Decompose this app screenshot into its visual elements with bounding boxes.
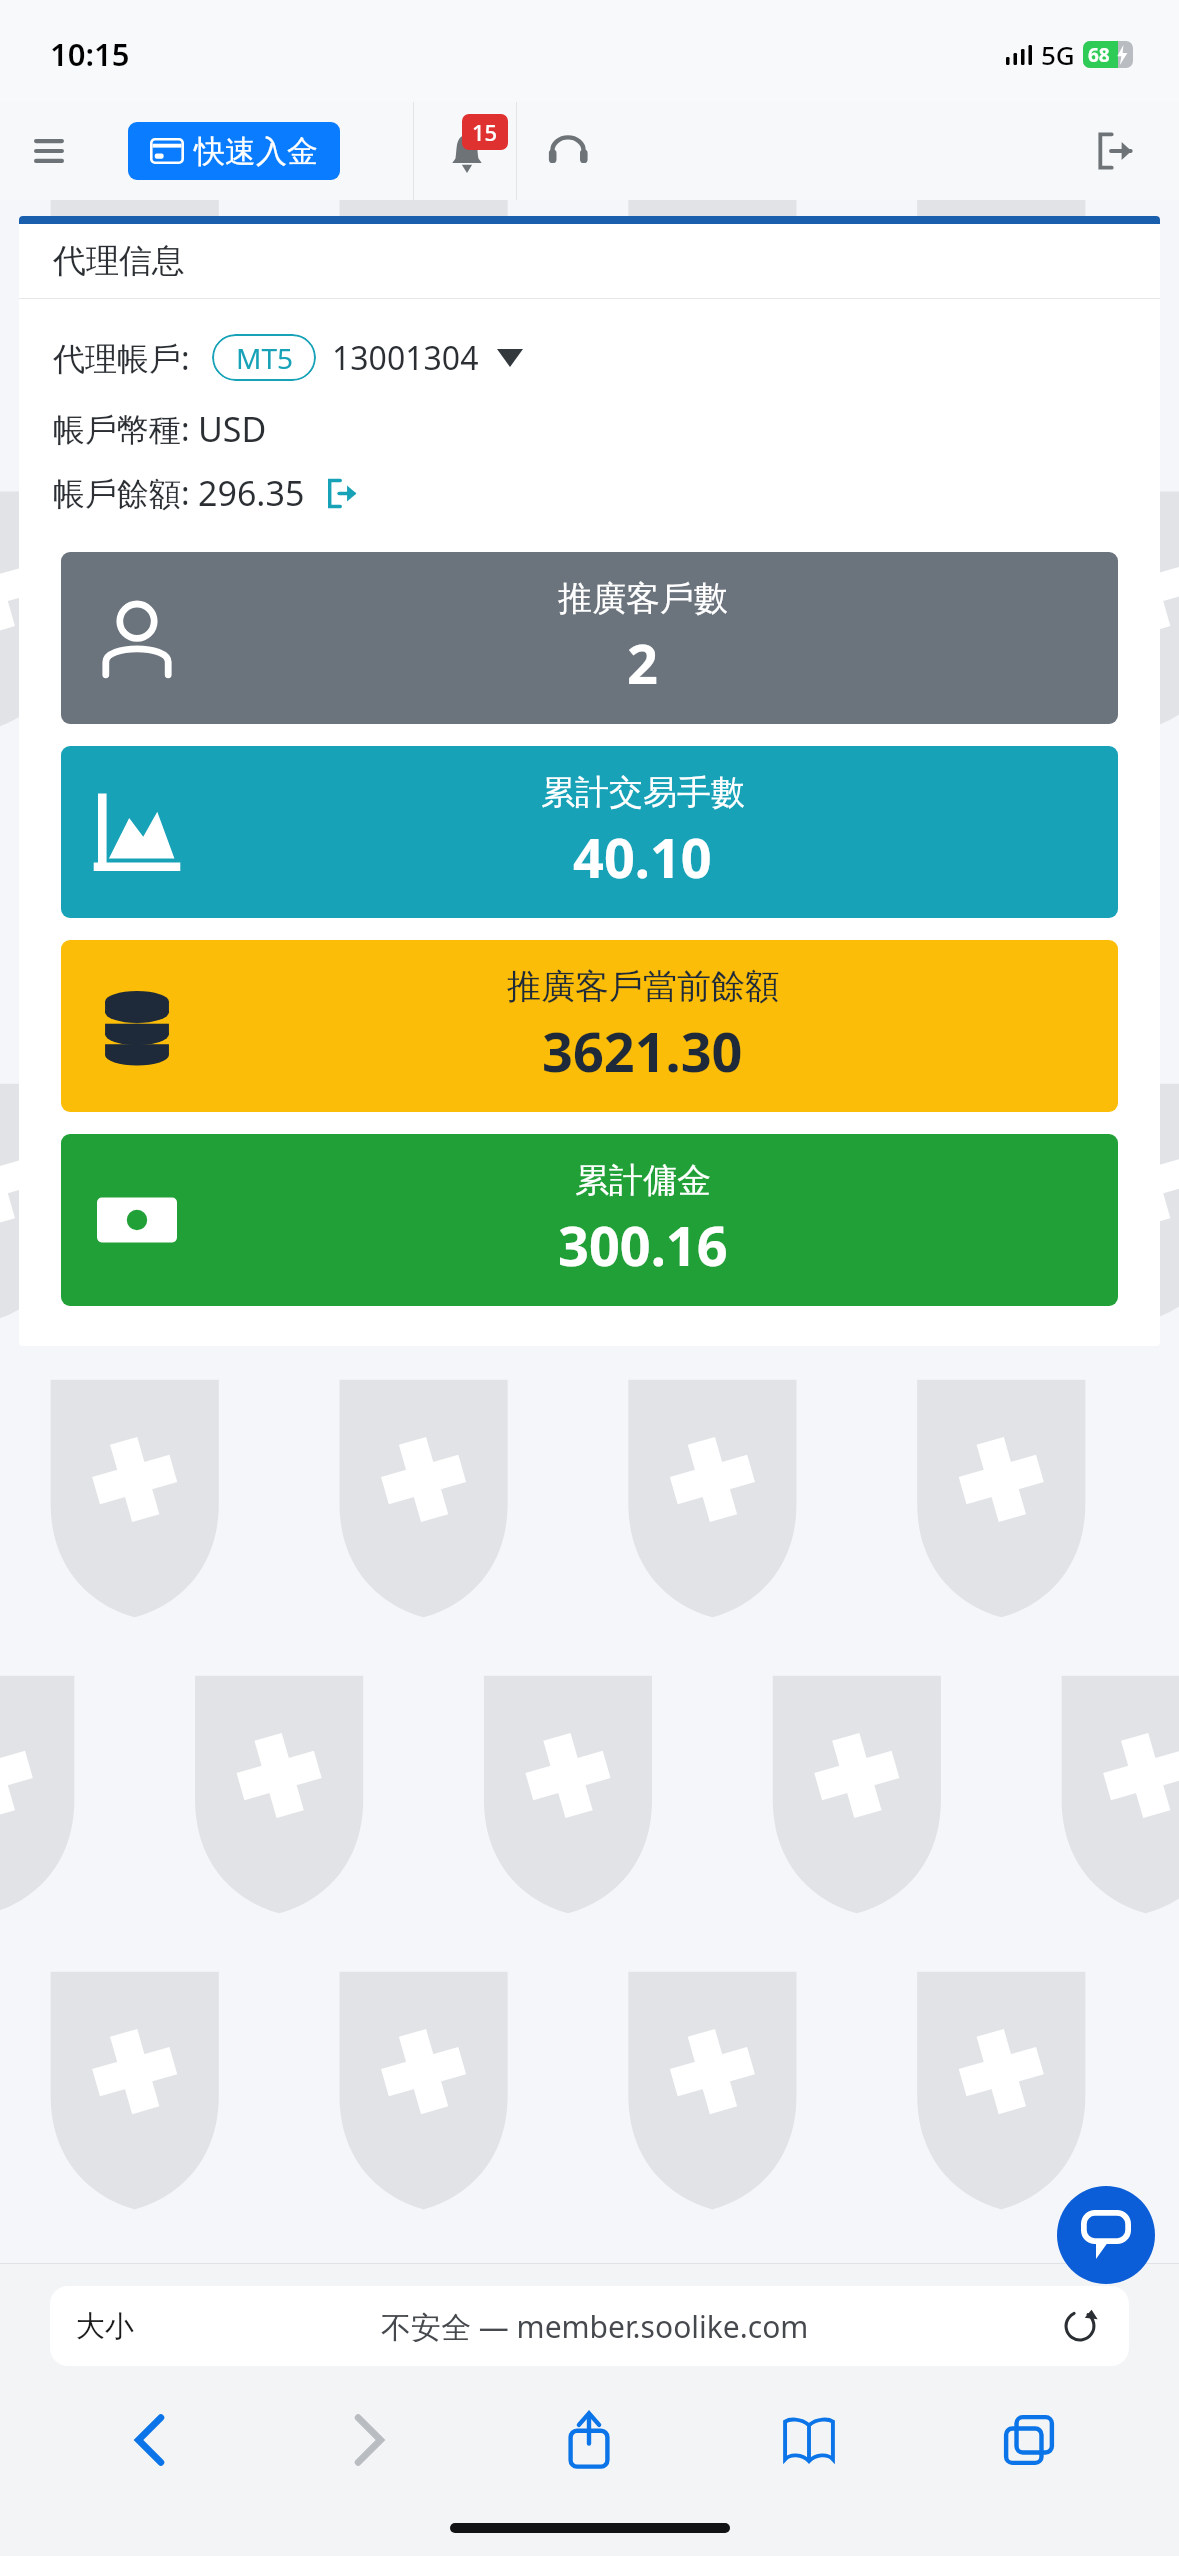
button[interactable]: Transfer funds <box>319 471 363 515</box>
button[interactable]: Back <box>40 2392 259 2488</box>
staticText: 13001304 <box>332 336 479 380</box>
button[interactable]: Bookmarks <box>699 2392 919 2488</box>
button[interactable]: Tabs <box>919 2392 1139 2488</box>
button[interactable]: 累計交易手數 <box>61 746 1118 918</box>
staticText: 40.10 <box>573 820 712 894</box>
staticText: 快速入金 <box>194 132 318 171</box>
staticText: 累計交易手數 <box>541 771 745 814</box>
staticText: 3621.30 <box>542 1014 743 1088</box>
staticText: 15 <box>472 117 498 147</box>
staticText: 帳戶餘額: <box>53 471 190 515</box>
staticText: 大小 <box>76 2308 134 2345</box>
button[interactable]: Reload <box>1057 2303 1103 2349</box>
button[interactable]: Forward <box>259 2392 479 2488</box>
staticText: 推廣客戶當前餘額 <box>507 965 779 1008</box>
staticText: USD <box>198 406 267 452</box>
staticText: 代理信息 <box>53 240 185 282</box>
staticText: 5G <box>1041 37 1075 72</box>
button[interactable]: Menu <box>20 122 78 180</box>
button[interactable]: Open chat support <box>1057 2186 1155 2284</box>
button[interactable]: Notifications <box>424 108 510 194</box>
button[interactable]: 快速入金 <box>128 122 340 180</box>
button[interactable]: 推廣客戶當前餘額 <box>61 940 1118 1112</box>
button[interactable]: 大小 <box>50 2286 1129 2366</box>
button[interactable]: 累計傭金 <box>61 1134 1118 1306</box>
staticText: 300.16 <box>558 1208 728 1282</box>
staticText: 2 <box>627 626 658 700</box>
staticText: 推廣客戶數 <box>558 577 728 620</box>
button[interactable]: Share <box>479 2392 699 2488</box>
staticText: 不安全 — member.soolike.com <box>381 2306 809 2347</box>
button[interactable]: Log out <box>1073 110 1155 192</box>
button[interactable]: 推廣客戶數 <box>61 552 1118 724</box>
staticText: 累計傭金 <box>575 1159 711 1202</box>
staticText: 10:15 <box>50 33 130 75</box>
button[interactable]: 代理帳戶: <box>53 334 1160 381</box>
staticText: 296.35 <box>198 470 305 516</box>
staticText: 代理帳戶: <box>53 336 190 380</box>
staticText: 68 <box>1088 42 1110 68</box>
staticText: MT5 <box>236 339 293 377</box>
button[interactable]: Support <box>525 108 611 194</box>
staticText: 帳戶幣種: <box>53 407 190 451</box>
